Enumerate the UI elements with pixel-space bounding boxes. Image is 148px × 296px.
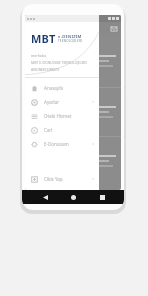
staticText: ANONIM SIRKETI (31, 67, 60, 72)
button[interactable] (25, 35, 121, 87)
button[interactable] (25, 88, 121, 136)
button[interactable]: Back (39, 191, 51, 203)
staticText: E-Donusum (44, 141, 91, 147)
button[interactable]: Recent apps (96, 191, 108, 203)
staticText: Oteki Hizmet (44, 113, 95, 119)
staticText: Cikis Yap (44, 176, 91, 182)
button[interactable]: E-Donusum (25, 137, 99, 151)
staticText: Ayarlar (44, 99, 91, 105)
staticText: merhaba, (31, 53, 47, 58)
button[interactable] (25, 137, 121, 185)
button[interactable]: Ayarlar (25, 95, 99, 109)
staticText: MBT E-DONUSUM TEKNOLOJILERI (31, 60, 87, 65)
button[interactable]: Messages (110, 25, 118, 33)
staticText: Anasayfa (44, 85, 95, 91)
button[interactable]: Anasayfa (25, 81, 99, 95)
staticText: Cari (44, 127, 95, 133)
staticText: MBT (31, 31, 56, 46)
button[interactable]: Oteki Hizmet (25, 109, 99, 123)
staticText: e-DENIZIM (58, 34, 82, 39)
button[interactable]: Cikis Yap (25, 172, 99, 186)
staticText: TEKNOLOJILERI (58, 39, 83, 43)
button[interactable]: Cari (25, 123, 99, 137)
button[interactable]: Home (67, 191, 79, 203)
